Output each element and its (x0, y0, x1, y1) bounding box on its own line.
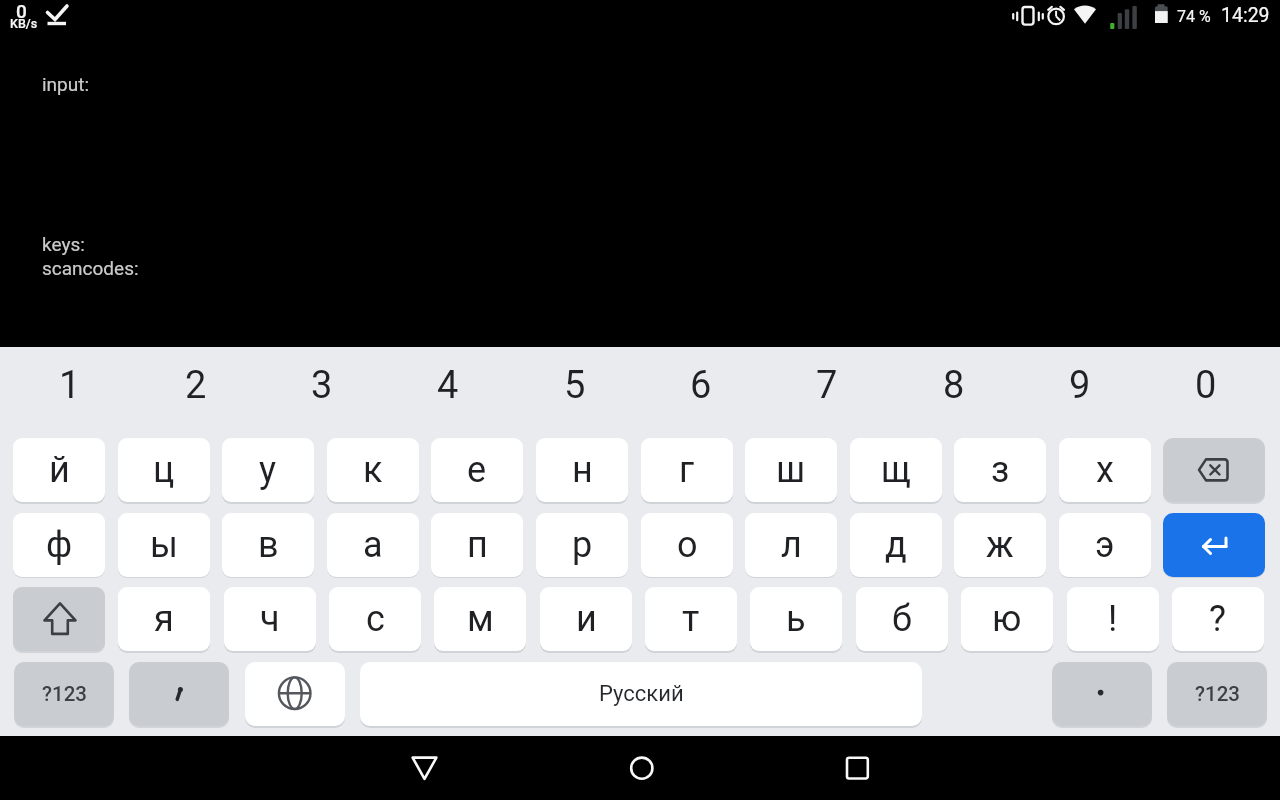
staticText: а (363, 524, 383, 566)
staticText: keys: (42, 233, 85, 255)
staticText: в (258, 524, 279, 566)
staticText: 0 (16, 0, 27, 22)
staticText: input: (42, 73, 90, 95)
staticText: р (572, 524, 593, 566)
staticText: л (781, 524, 802, 566)
staticText: 6 (690, 363, 712, 408)
staticText: ?123 (1195, 682, 1240, 706)
staticText: х (1096, 449, 1114, 491)
staticText: 5 (564, 363, 586, 408)
staticText: щ (881, 449, 911, 491)
staticText: т (682, 598, 700, 640)
staticText: у (259, 449, 277, 491)
staticText: б (892, 598, 912, 640)
staticText: Русский (599, 681, 684, 707)
staticText: з (991, 449, 1010, 491)
staticText: ж (986, 524, 1014, 566)
staticText: 1 (59, 363, 81, 408)
staticText: ф (46, 524, 73, 566)
staticText: 3 (311, 363, 333, 408)
staticText: г (679, 449, 695, 491)
staticText: н (572, 449, 593, 491)
staticText: е (467, 449, 487, 491)
staticText: с (366, 598, 385, 640)
staticText: ! (1108, 598, 1118, 640)
staticText: ч (260, 598, 280, 640)
staticText: к (363, 449, 383, 491)
staticText: 14:29 (1221, 4, 1270, 27)
staticText: и (576, 598, 597, 640)
staticText: 0 (1195, 363, 1217, 408)
staticText: 7 (816, 363, 838, 408)
staticText: ь (786, 598, 806, 640)
staticText: ц (153, 449, 175, 491)
staticText: scancodes: (42, 257, 139, 279)
staticText: э (1095, 524, 1115, 566)
staticText: я (154, 598, 174, 640)
staticText: 74 % (1177, 7, 1211, 26)
staticText: ю (992, 598, 1022, 640)
staticText: 9 (1069, 363, 1091, 408)
staticText: о (677, 524, 698, 566)
staticText: ы (150, 524, 178, 566)
staticText: й (49, 449, 70, 491)
staticText: 4 (437, 363, 459, 408)
staticText: ? (1209, 598, 1227, 640)
staticText: 2 (185, 363, 207, 408)
staticText: п (467, 524, 488, 566)
staticText: 8 (943, 363, 965, 408)
staticText: д (885, 524, 907, 566)
staticText: KB/s (10, 16, 38, 31)
staticText: ш (776, 449, 806, 491)
staticText: м (467, 598, 494, 640)
staticText: ?123 (42, 682, 87, 706)
